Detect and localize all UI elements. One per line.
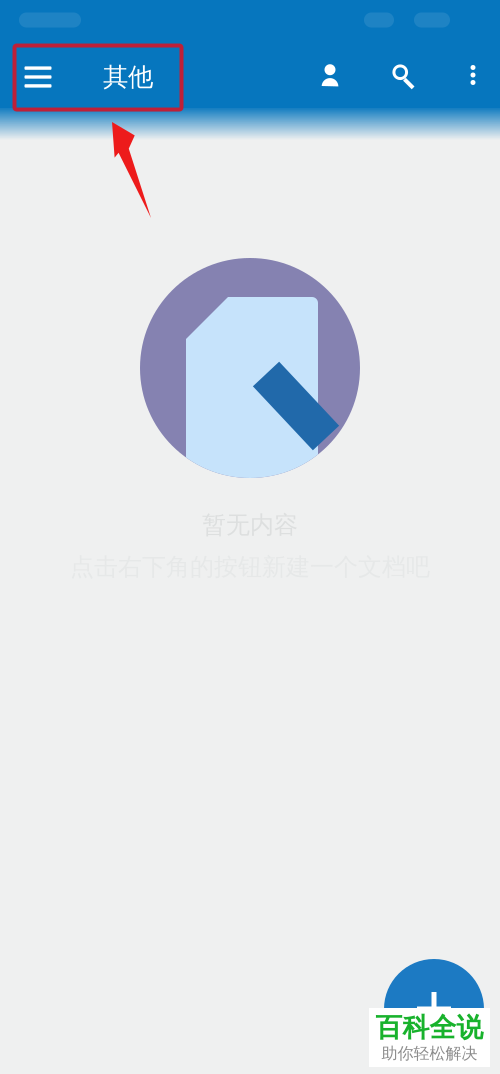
staticText: 暂无内容 — [202, 510, 298, 540]
staticText: 其他 — [103, 61, 153, 92]
staticText: 百科全说 — [375, 1011, 483, 1044]
staticText: 点击右下角的按钮新建一个文档吧 — [70, 552, 430, 582]
staticText: 助你轻松解决 — [381, 1044, 477, 1063]
button[interactable]: More options — [451, 42, 495, 108]
button[interactable]: Add — [384, 959, 484, 1059]
button[interactable]: Menu — [8, 44, 68, 110]
button[interactable]: Account — [299, 42, 361, 108]
button[interactable]: Search — [372, 42, 434, 108]
